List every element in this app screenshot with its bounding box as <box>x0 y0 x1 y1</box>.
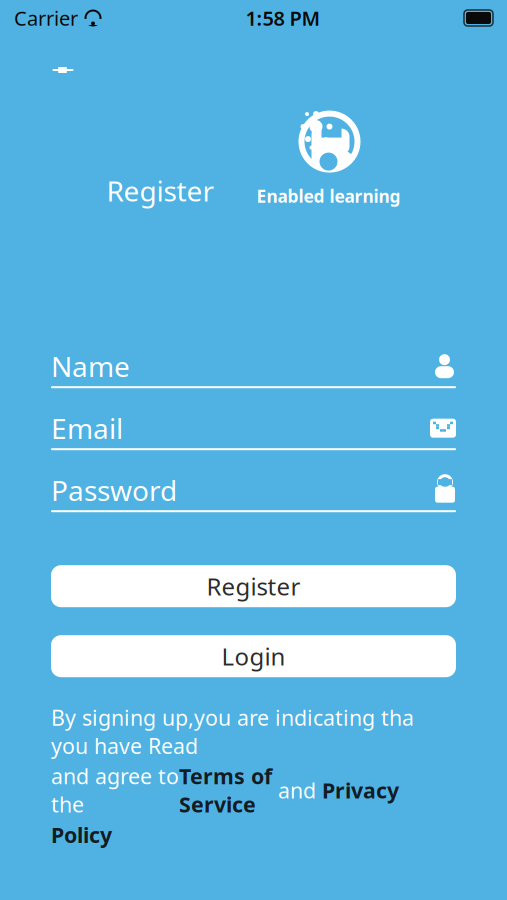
button[interactable]: Register <box>51 565 456 607</box>
staticText: and agree to the <box>51 762 179 818</box>
staticText: Register <box>206 570 300 602</box>
staticText: and <box>272 776 322 804</box>
staticText: Register <box>106 172 214 209</box>
button[interactable]: Terms of Service <box>179 762 272 818</box>
button[interactable]: Policy <box>51 820 112 849</box>
staticText: By signing up,you are indicating tha you… <box>51 703 414 760</box>
staticText: Privacy <box>322 776 399 804</box>
button[interactable]: Login <box>51 635 456 677</box>
staticText: Login <box>221 640 285 672</box>
staticText: Carrier <box>14 5 78 31</box>
staticText: Name <box>51 348 130 385</box>
staticText: Terms of Service <box>179 762 272 818</box>
button[interactable]: Back <box>40 50 84 90</box>
staticText: Policy <box>51 820 112 849</box>
staticText: Password <box>51 472 177 509</box>
staticText: Email <box>51 410 123 447</box>
staticText: 1:58 PM <box>245 5 320 31</box>
staticText: Enabled learning <box>256 185 400 208</box>
